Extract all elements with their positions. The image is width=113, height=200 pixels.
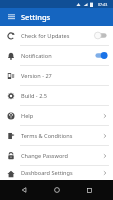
button[interactable]: Back [16, 182, 32, 198]
staticText: Change Password [21, 152, 68, 160]
staticText: 07:43 [98, 2, 108, 7]
button[interactable]: Dashboard Settings [0, 166, 113, 180]
staticText: Help [21, 112, 34, 120]
button[interactable]: Help [0, 106, 113, 125]
staticText: Check for Updates [21, 32, 70, 40]
staticText: Settings [21, 12, 51, 22]
button[interactable]: Toggle off [94, 31, 108, 40]
button[interactable]: Build - 2.5 [0, 86, 113, 105]
button[interactable]: Check for Updates [0, 26, 113, 45]
button[interactable]: Terms & Conditions [0, 126, 113, 145]
button[interactable]: Toggle on [94, 51, 108, 60]
staticText: Dashboard Settings [21, 169, 73, 177]
button[interactable]: Recent apps [81, 182, 97, 198]
button[interactable]: Change Password [0, 146, 113, 165]
button[interactable]: Open navigation menu [5, 11, 17, 23]
staticText: Notification [21, 52, 52, 60]
button[interactable]: Home [49, 182, 65, 198]
staticText: Terms & Conditions [21, 132, 73, 140]
button[interactable]: Version - 27 [0, 66, 113, 85]
staticText: Version - 27 [21, 72, 52, 80]
staticText: Build - 2.5 [21, 92, 48, 100]
button[interactable]: Notification [0, 46, 113, 65]
